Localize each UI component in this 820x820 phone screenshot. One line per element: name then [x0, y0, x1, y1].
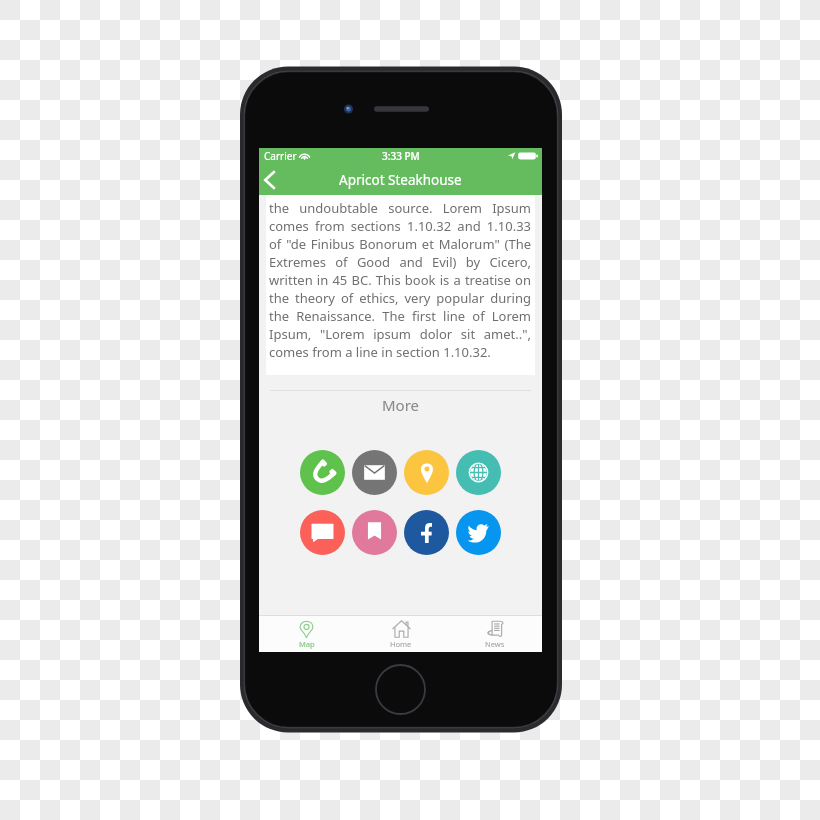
staticText: Carrier — [264, 149, 297, 163]
staticText: More — [259, 395, 542, 415]
button[interactable]: Message — [300, 510, 345, 555]
button[interactable]: Back — [259, 164, 287, 195]
staticText: Map — [299, 639, 315, 649]
button[interactable]: Email — [352, 450, 397, 495]
button[interactable]: Twitter — [456, 510, 501, 555]
button[interactable]: Location — [404, 450, 449, 495]
button[interactable]: News — [448, 616, 542, 652]
button[interactable]: Call — [300, 450, 345, 495]
button[interactable]: Map — [259, 616, 354, 652]
button[interactable]: Website — [456, 450, 501, 495]
button[interactable]: Facebook — [404, 510, 449, 555]
button[interactable]: Home — [354, 616, 448, 652]
staticText: Apricot Steakhouse — [339, 171, 462, 189]
button[interactable]: Bookmark — [352, 510, 397, 555]
staticText: 3:33 PM — [382, 149, 420, 163]
staticText: News — [485, 639, 505, 649]
staticText: Home — [390, 639, 412, 649]
staticText: the undoubtable source. Lorem Ipsum come… — [269, 199, 531, 361]
